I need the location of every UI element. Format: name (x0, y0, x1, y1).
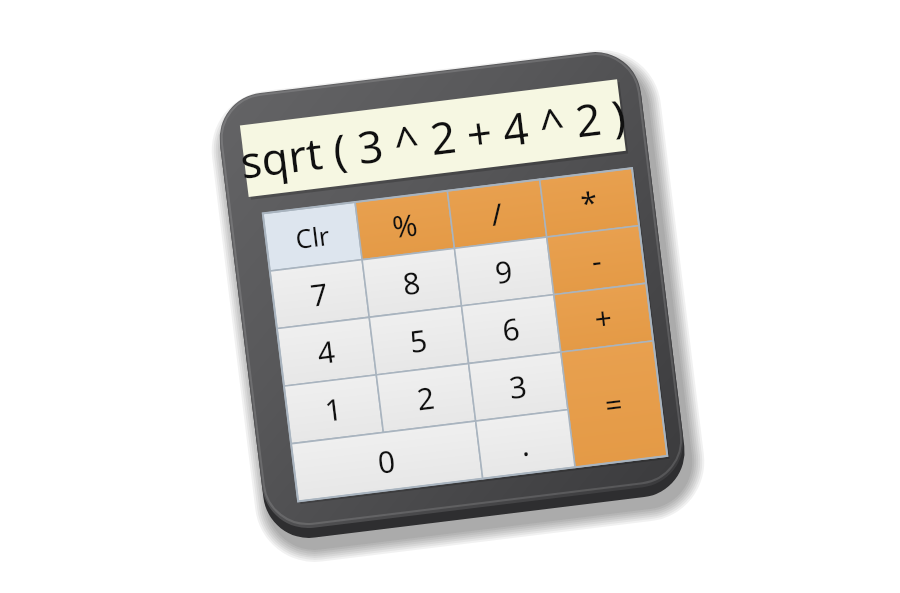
button[interactable]: Calculator application icon (0, 0, 900, 593)
